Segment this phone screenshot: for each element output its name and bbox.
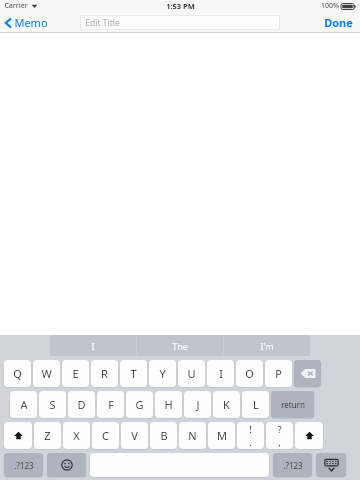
staticText: I — [91, 340, 95, 352]
button[interactable]: I — [50, 335, 136, 356]
staticText: P — [275, 366, 282, 381]
button[interactable]: I'm — [224, 335, 310, 356]
staticText: .?123 — [14, 460, 34, 471]
staticText: T — [130, 366, 137, 381]
staticText: W — [41, 366, 52, 381]
staticText: C — [102, 428, 109, 443]
staticText: R — [101, 366, 108, 381]
staticText: S — [49, 397, 56, 412]
staticText: return — [281, 399, 305, 410]
staticText: V — [131, 428, 138, 443]
button[interactable]: Emoji — [47, 453, 86, 477]
button[interactable]: Memo — [0, 13, 54, 32]
button[interactable]: Shift — [4, 422, 32, 449]
staticText: H — [164, 397, 173, 412]
staticText: G — [135, 397, 144, 412]
staticText: Done — [324, 15, 353, 30]
button[interactable]: M — [208, 422, 235, 449]
staticText: Edit Title — [85, 17, 120, 29]
staticText: X — [73, 428, 80, 443]
staticText: N — [188, 428, 197, 443]
staticText: 1:53 PM — [166, 1, 195, 11]
staticText: Y — [159, 366, 166, 381]
button[interactable]: The — [137, 335, 223, 356]
button[interactable]: F — [97, 391, 124, 418]
button[interactable]: X — [63, 422, 90, 449]
staticText: F — [108, 397, 114, 412]
button[interactable]: R — [91, 360, 118, 387]
staticText: ? , — [277, 423, 282, 449]
staticText: M — [217, 428, 227, 443]
staticText: O — [245, 366, 254, 381]
staticText: Memo — [14, 15, 48, 30]
staticText: .?123 — [283, 460, 303, 471]
button[interactable]: S — [39, 391, 66, 418]
staticText: The — [172, 340, 188, 352]
staticText: 100% — [321, 1, 339, 11]
button[interactable]: I — [207, 360, 234, 387]
button[interactable]: V — [121, 422, 148, 449]
button[interactable]: Backspace — [294, 360, 321, 387]
button[interactable]: Y — [149, 360, 176, 387]
staticText: I'm — [260, 340, 274, 352]
staticText: Q — [13, 366, 22, 381]
button[interactable]: H — [155, 391, 182, 418]
button[interactable]: O — [236, 360, 263, 387]
button[interactable]: C — [92, 422, 119, 449]
button[interactable]: Edit Title — [80, 15, 280, 30]
staticText: B — [160, 428, 168, 443]
button[interactable]: U — [178, 360, 205, 387]
staticText: J — [196, 397, 200, 412]
button[interactable]: E — [62, 360, 89, 387]
button[interactable]: K — [213, 391, 240, 418]
button[interactable]: return — [271, 391, 314, 418]
button[interactable]: A — [10, 391, 37, 418]
staticText: Z — [44, 428, 51, 443]
button[interactable]: G — [126, 391, 153, 418]
staticText: K — [223, 397, 230, 412]
button[interactable]: Done — [317, 13, 360, 32]
staticText: I — [219, 366, 223, 381]
button[interactable]: .?123 — [273, 453, 312, 477]
button[interactable]: T — [120, 360, 147, 387]
button[interactable]: .?123 — [4, 453, 43, 477]
button[interactable]: J — [184, 391, 211, 418]
button[interactable]: B — [150, 422, 177, 449]
button[interactable]: Shift — [295, 422, 323, 449]
button[interactable]: Q — [4, 360, 31, 387]
button[interactable]: ! . — [237, 422, 264, 449]
staticText: ! . — [249, 423, 252, 449]
button[interactable]: D — [68, 391, 95, 418]
button[interactable]: W — [33, 360, 60, 387]
staticText: U — [187, 366, 196, 381]
staticText: D — [77, 397, 86, 412]
staticText: Carrier — [4, 1, 28, 11]
button[interactable]: N — [179, 422, 206, 449]
staticText: L — [253, 397, 259, 412]
button[interactable]: ? , — [266, 422, 293, 449]
button[interactable]: P — [265, 360, 292, 387]
button[interactable]: L — [242, 391, 269, 418]
button[interactable]: Hide keyboard — [316, 453, 346, 477]
staticText: E — [72, 366, 79, 381]
staticText: A — [20, 397, 28, 412]
button[interactable]: Z — [34, 422, 61, 449]
